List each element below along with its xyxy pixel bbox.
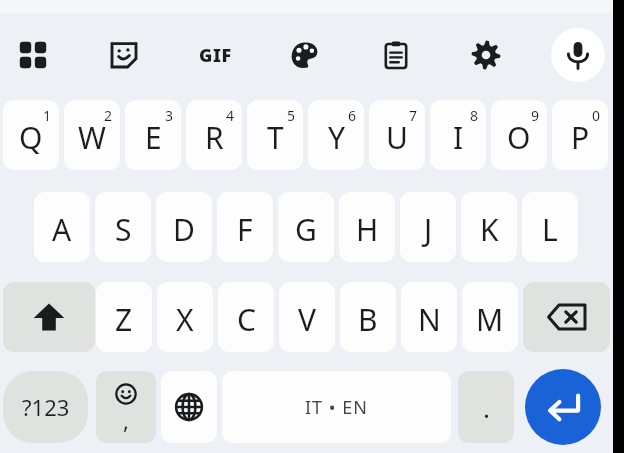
- staticText: A: [52, 209, 72, 250]
- button[interactable]: G: [278, 192, 334, 262]
- button[interactable]: .: [458, 371, 514, 443]
- button[interactable]: GIF: [189, 29, 241, 81]
- staticText: E: [145, 117, 162, 158]
- staticText: Z: [115, 299, 133, 340]
- button[interactable]: Y: [308, 100, 364, 170]
- staticText: IT • EN: [305, 395, 368, 420]
- button[interactable]: F: [217, 192, 273, 262]
- button[interactable]: Symbols grid: [7, 29, 59, 81]
- button[interactable]: O: [491, 100, 547, 170]
- button[interactable]: S: [95, 192, 151, 262]
- button[interactable]: Change language: [161, 371, 217, 443]
- button[interactable]: Shift: [3, 282, 95, 352]
- staticText: 9: [531, 106, 540, 125]
- button[interactable]: X: [157, 282, 213, 352]
- staticText: V: [298, 299, 316, 340]
- button[interactable]: J: [400, 192, 456, 262]
- button[interactable]: Backspace: [523, 282, 610, 352]
- staticText: GIF: [199, 43, 232, 68]
- button[interactable]: L: [522, 192, 578, 262]
- staticText: 0: [592, 106, 601, 125]
- staticText: J: [424, 209, 433, 250]
- staticText: 2: [104, 106, 113, 125]
- button[interactable]: Q: [3, 100, 59, 170]
- staticText: .: [483, 390, 490, 425]
- staticText: ?123: [22, 392, 70, 422]
- button[interactable]: Clipboard: [370, 29, 422, 81]
- button[interactable]: R: [186, 100, 242, 170]
- button[interactable]: K: [461, 192, 517, 262]
- button[interactable]: IT • EN: [222, 371, 451, 443]
- staticText: 7: [409, 106, 418, 125]
- button[interactable]: Voice input: [551, 28, 605, 82]
- staticText: N: [418, 299, 441, 340]
- staticText: M: [476, 299, 504, 340]
- button[interactable]: U: [369, 100, 425, 170]
- staticText: O: [507, 117, 531, 158]
- staticText: K: [480, 209, 499, 250]
- button[interactable]: W: [64, 100, 120, 170]
- button[interactable]: C: [218, 282, 274, 352]
- staticText: S: [115, 209, 132, 250]
- staticText: F: [237, 209, 253, 250]
- button[interactable]: Themes: [279, 29, 331, 81]
- staticText: L: [542, 209, 558, 250]
- button[interactable]: B: [340, 282, 396, 352]
- staticText: 1: [43, 106, 52, 125]
- button[interactable]: E: [125, 100, 181, 170]
- button[interactable]: I: [430, 100, 486, 170]
- staticText: ,: [123, 405, 129, 435]
- button[interactable]: D: [156, 192, 212, 262]
- staticText: I: [453, 117, 464, 158]
- button[interactable]: A: [34, 192, 90, 262]
- staticText: Y: [328, 117, 345, 158]
- button[interactable]: T: [247, 100, 303, 170]
- button[interactable]: Settings: [460, 29, 512, 81]
- staticText: X: [176, 299, 194, 340]
- button[interactable]: Stickers: [98, 29, 150, 81]
- staticText: 3: [165, 106, 174, 125]
- staticText: D: [173, 209, 195, 250]
- staticText: R: [205, 117, 224, 158]
- staticText: C: [237, 299, 256, 340]
- button[interactable]: M: [462, 282, 518, 352]
- button[interactable]: V: [279, 282, 335, 352]
- staticText: P: [571, 117, 590, 158]
- staticText: 6: [348, 106, 357, 125]
- staticText: 8: [470, 106, 479, 125]
- staticText: H: [356, 209, 379, 250]
- button[interactable]: H: [339, 192, 395, 262]
- staticText: W: [78, 117, 106, 158]
- button[interactable]: P: [552, 100, 608, 170]
- staticText: 4: [226, 106, 235, 125]
- staticText: G: [295, 209, 317, 250]
- button[interactable]: Z: [96, 282, 152, 352]
- staticText: B: [358, 299, 378, 340]
- staticText: 5: [287, 106, 296, 125]
- staticText: Q: [19, 117, 43, 158]
- button[interactable]: N: [401, 282, 457, 352]
- button[interactable]: Emoji and comma: [96, 371, 156, 443]
- staticText: T: [267, 117, 284, 158]
- button[interactable]: Enter: [525, 369, 601, 445]
- button[interactable]: ?123: [3, 371, 88, 443]
- staticText: U: [386, 117, 408, 158]
